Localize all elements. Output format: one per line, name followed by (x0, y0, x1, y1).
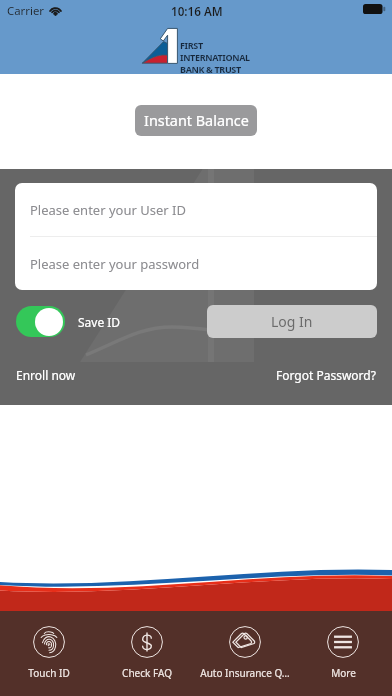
button[interactable]: Touch ID (0, 611, 98, 696)
button[interactable]: Check FAQ (98, 611, 196, 696)
staticText: Carrier (7, 3, 45, 19)
button[interactable]: Save ID (16, 306, 121, 337)
staticText: More (331, 666, 356, 680)
staticText: FIRST (180, 39, 203, 51)
button[interactable]: Please enter your User ID (15, 183, 377, 236)
button[interactable]: Forgot Password? (276, 367, 376, 383)
staticText: Touch ID (28, 666, 70, 680)
staticText: INTERNATIONAL (180, 51, 250, 63)
button[interactable]: More (294, 611, 392, 696)
staticText: Enroll now (16, 367, 76, 383)
staticText: Log In (271, 312, 313, 331)
staticText: Forgot Password? (276, 367, 376, 383)
staticText: Please enter your password (30, 255, 200, 273)
staticText: BANK & TRUST (180, 63, 241, 75)
button[interactable]: Instant Balance (135, 105, 257, 136)
button[interactable]: Please enter your password (15, 237, 377, 290)
button[interactable]: Enroll now (16, 367, 76, 383)
staticText: Instant Balance (144, 111, 249, 131)
button[interactable]: Auto Insurance Q… (196, 611, 294, 696)
staticText: 10:16 AM (171, 3, 223, 19)
staticText: Please enter your User ID (30, 201, 186, 219)
staticText: Auto Insurance Q… (200, 666, 290, 680)
staticText: Save ID (78, 314, 121, 330)
button[interactable]: Log In (207, 305, 377, 338)
staticText: Check FAQ (122, 666, 172, 680)
